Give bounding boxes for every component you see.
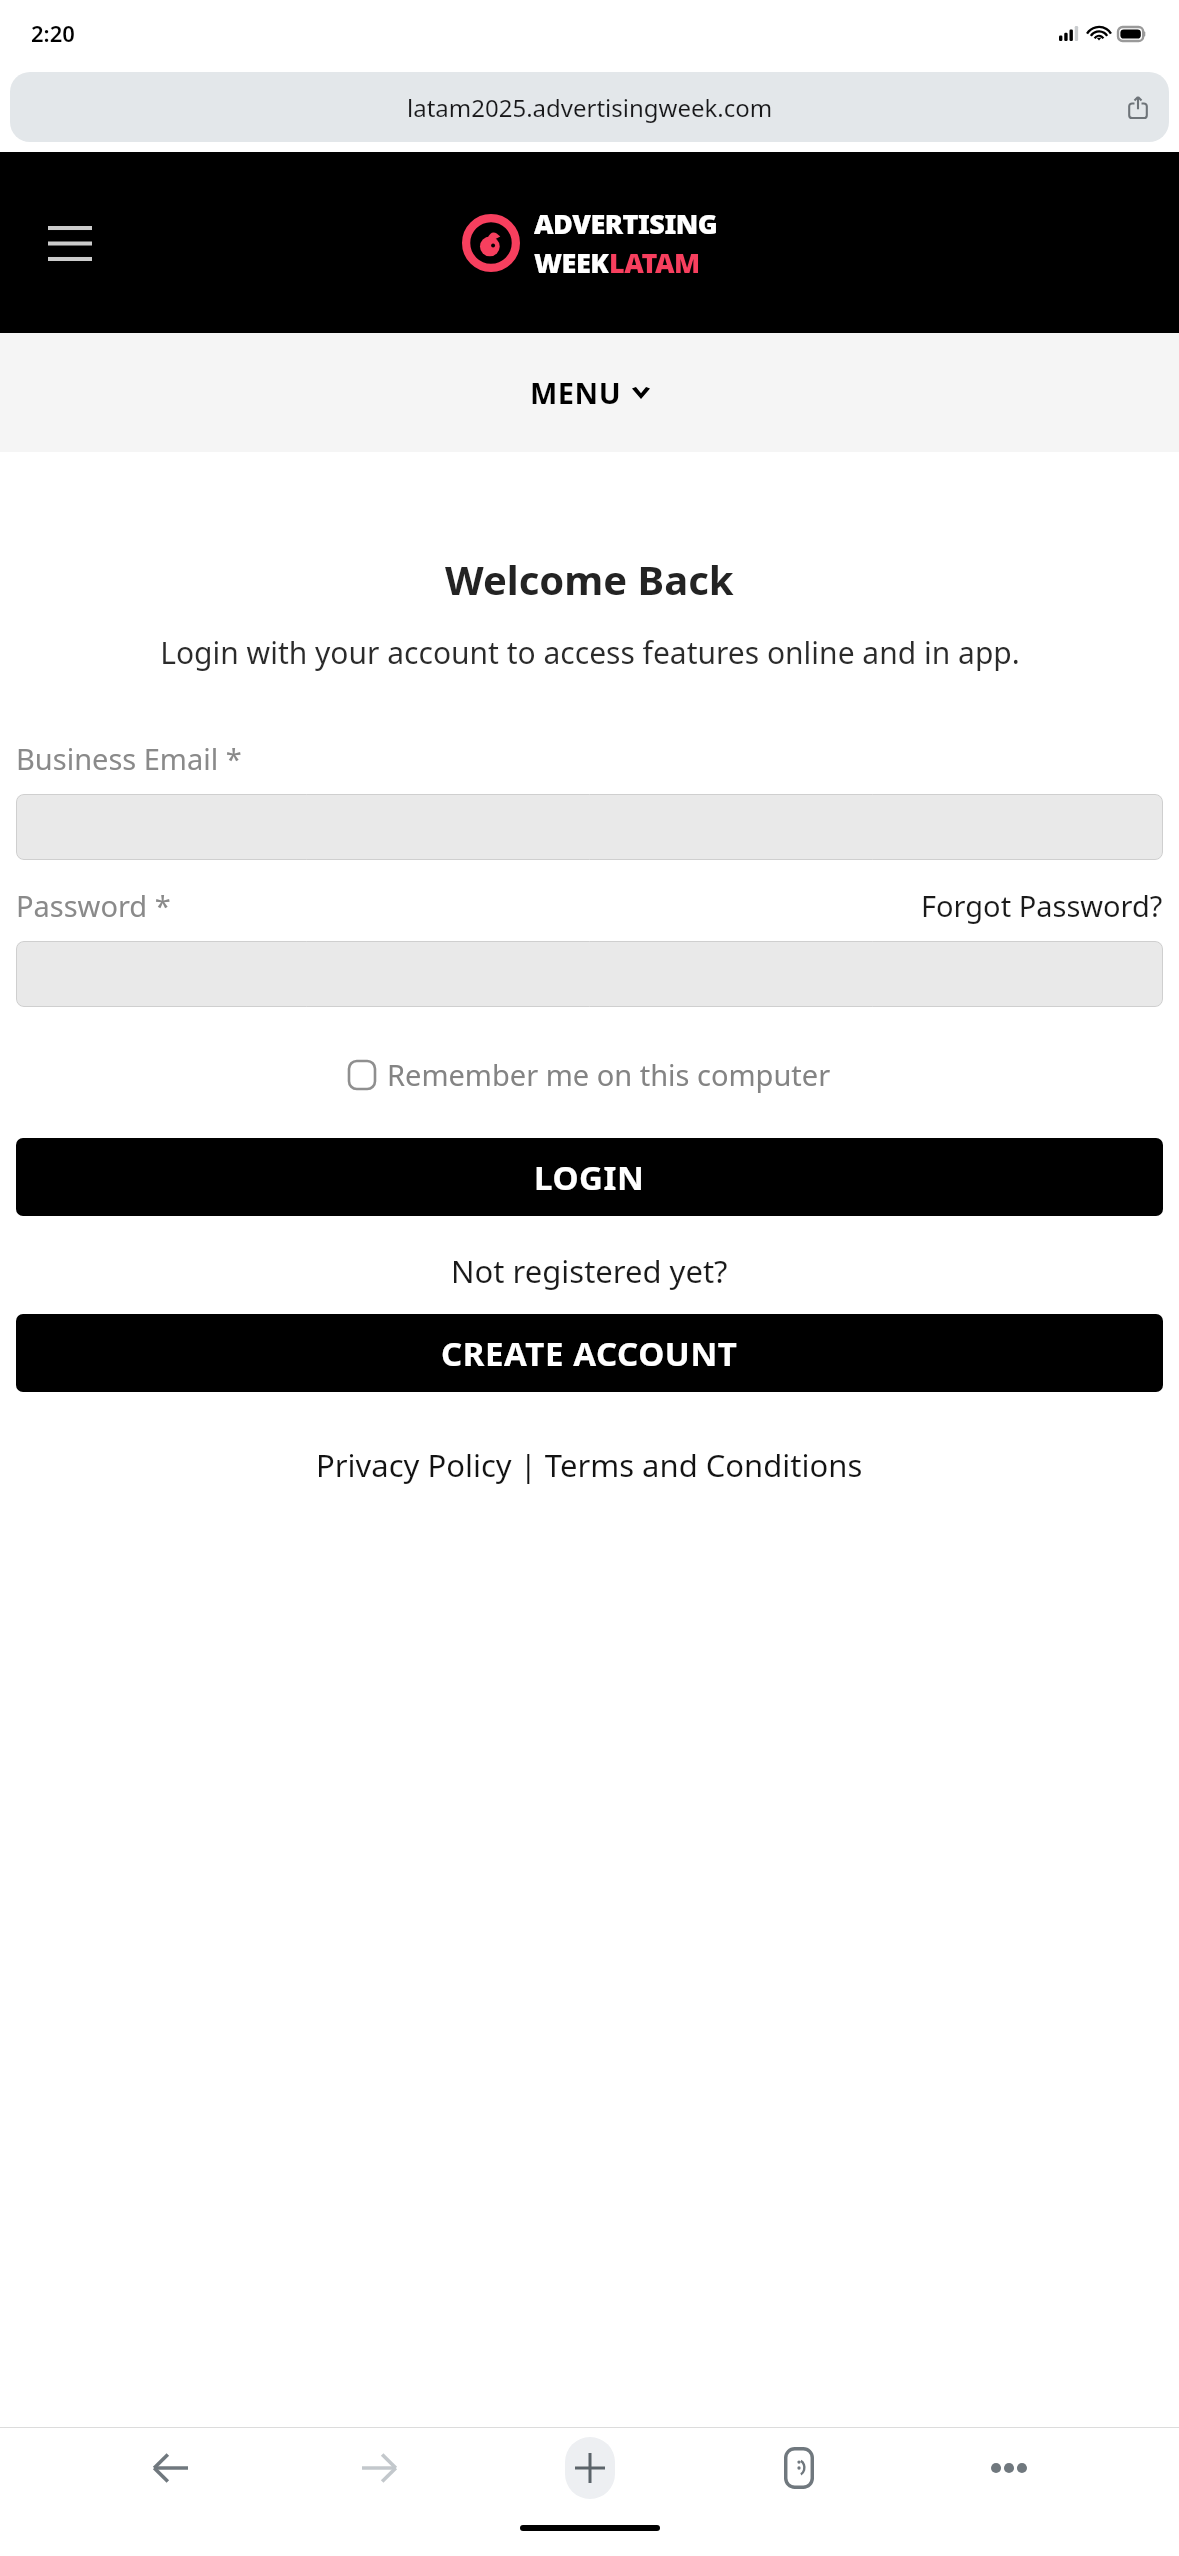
staticText: LATAM	[609, 244, 700, 281]
button[interactable]	[16, 794, 1163, 860]
button[interactable]	[16, 941, 1163, 1007]
button[interactable]: Menu	[40, 215, 100, 271]
button[interactable]: CREATE ACCOUNT	[16, 1314, 1163, 1392]
staticText: Password *	[16, 886, 171, 925]
button[interactable]: Not registered yet?	[451, 1250, 728, 1292]
staticText: Not registered yet?	[451, 1250, 728, 1292]
button[interactable]: Forward	[334, 2432, 426, 2504]
button[interactable]: latam2025.advertisingweek.com	[10, 72, 1169, 142]
button[interactable]: Remember me on this computer	[349, 1055, 831, 1094]
staticText: Login with your account to access featur…	[160, 632, 1020, 673]
button[interactable]: Back	[124, 2432, 216, 2504]
staticText: 2:20	[31, 18, 75, 48]
staticText: LOGIN	[534, 1155, 645, 1200]
staticText: Welcome Back	[445, 552, 734, 606]
button[interactable]: Tabs	[753, 2432, 845, 2504]
staticText: WEEK	[534, 244, 609, 281]
staticText: latam2025.advertisingweek.com	[407, 91, 773, 124]
button[interactable]: More	[963, 2432, 1055, 2504]
staticText: Forgot Password?	[921, 886, 1163, 925]
staticText: Business Email *	[16, 739, 242, 778]
button[interactable]: Privacy Policy | Terms and Conditions	[316, 1444, 863, 1486]
staticText: MENU	[530, 373, 622, 412]
staticText: Remember me on this computer	[387, 1055, 831, 1094]
button[interactable]: Forgot Password?	[921, 886, 1163, 925]
staticText: CREATE ACCOUNT	[441, 1331, 738, 1376]
button[interactable]: MENU	[0, 333, 1179, 452]
staticText: Privacy Policy | Terms and Conditions	[316, 1444, 863, 1486]
button[interactable]: New tab	[544, 2432, 636, 2504]
button[interactable]: Share	[1121, 90, 1155, 124]
button[interactable]: ADVERTISING	[462, 205, 718, 281]
staticText: ADVERTISING	[534, 205, 718, 242]
button[interactable]: LOGIN	[16, 1138, 1163, 1216]
